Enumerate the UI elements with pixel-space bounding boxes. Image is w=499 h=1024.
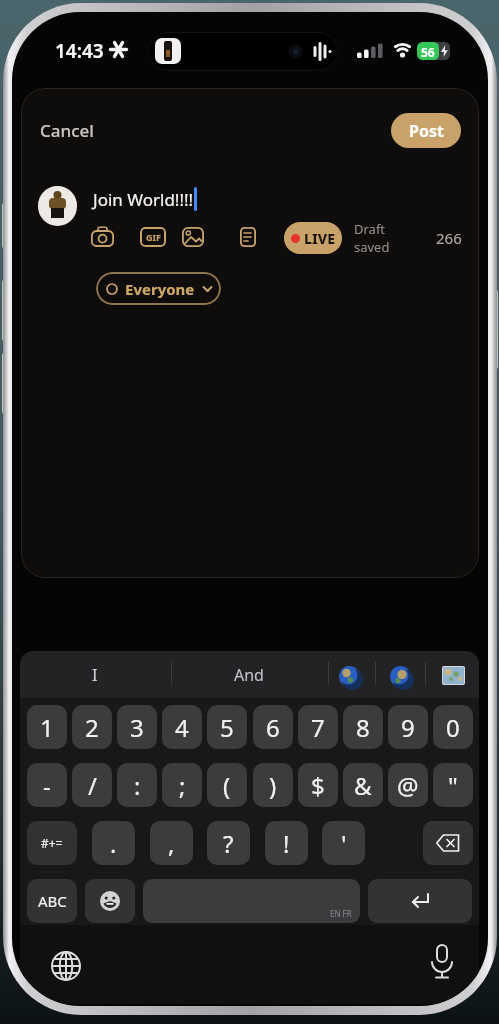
staticText: :: [134, 769, 141, 802]
staticText: EN FR: [330, 908, 352, 919]
staticText: &: [354, 769, 372, 802]
staticText: ': [341, 827, 347, 860]
staticText: Join World!!!!: [93, 188, 194, 211]
staticText: ;: [179, 769, 186, 802]
staticText: Draft: [354, 220, 386, 238]
staticText: !: [283, 827, 290, 860]
staticText: /: [88, 769, 97, 802]
staticText: Post: [409, 120, 444, 142]
staticText: Cancel: [40, 119, 94, 142]
staticText: GIF: [146, 231, 161, 243]
staticText: 56: [421, 44, 435, 60]
staticText: 266: [436, 228, 462, 248]
staticText: 4: [175, 711, 189, 744]
staticText: #+=: [41, 835, 63, 851]
staticText: 3: [130, 711, 144, 744]
staticText: (: [223, 769, 231, 802]
staticText: ABC: [38, 891, 67, 911]
staticText: I: [92, 664, 98, 686]
staticText: -: [43, 769, 51, 802]
staticText: 8: [356, 711, 370, 744]
staticText: 1: [40, 711, 54, 744]
staticText: 0: [446, 711, 460, 744]
staticText: ): [269, 769, 277, 802]
staticText: 2: [85, 711, 99, 744]
staticText: And: [234, 664, 264, 686]
staticText: ": [448, 769, 458, 802]
staticText: LIVE: [304, 229, 335, 248]
staticText: ,: [168, 827, 175, 860]
staticText: saved: [354, 238, 390, 256]
staticText: ?: [223, 827, 234, 860]
staticText: Everyone: [125, 279, 195, 299]
staticText: 14:43: [55, 38, 104, 64]
staticText: $: [311, 769, 325, 802]
staticText: 9: [401, 711, 415, 744]
staticText: 6: [266, 711, 280, 744]
staticText: .: [110, 827, 117, 860]
staticText: 7: [311, 711, 325, 744]
staticText: 5: [220, 711, 234, 744]
staticText: @: [397, 769, 419, 802]
